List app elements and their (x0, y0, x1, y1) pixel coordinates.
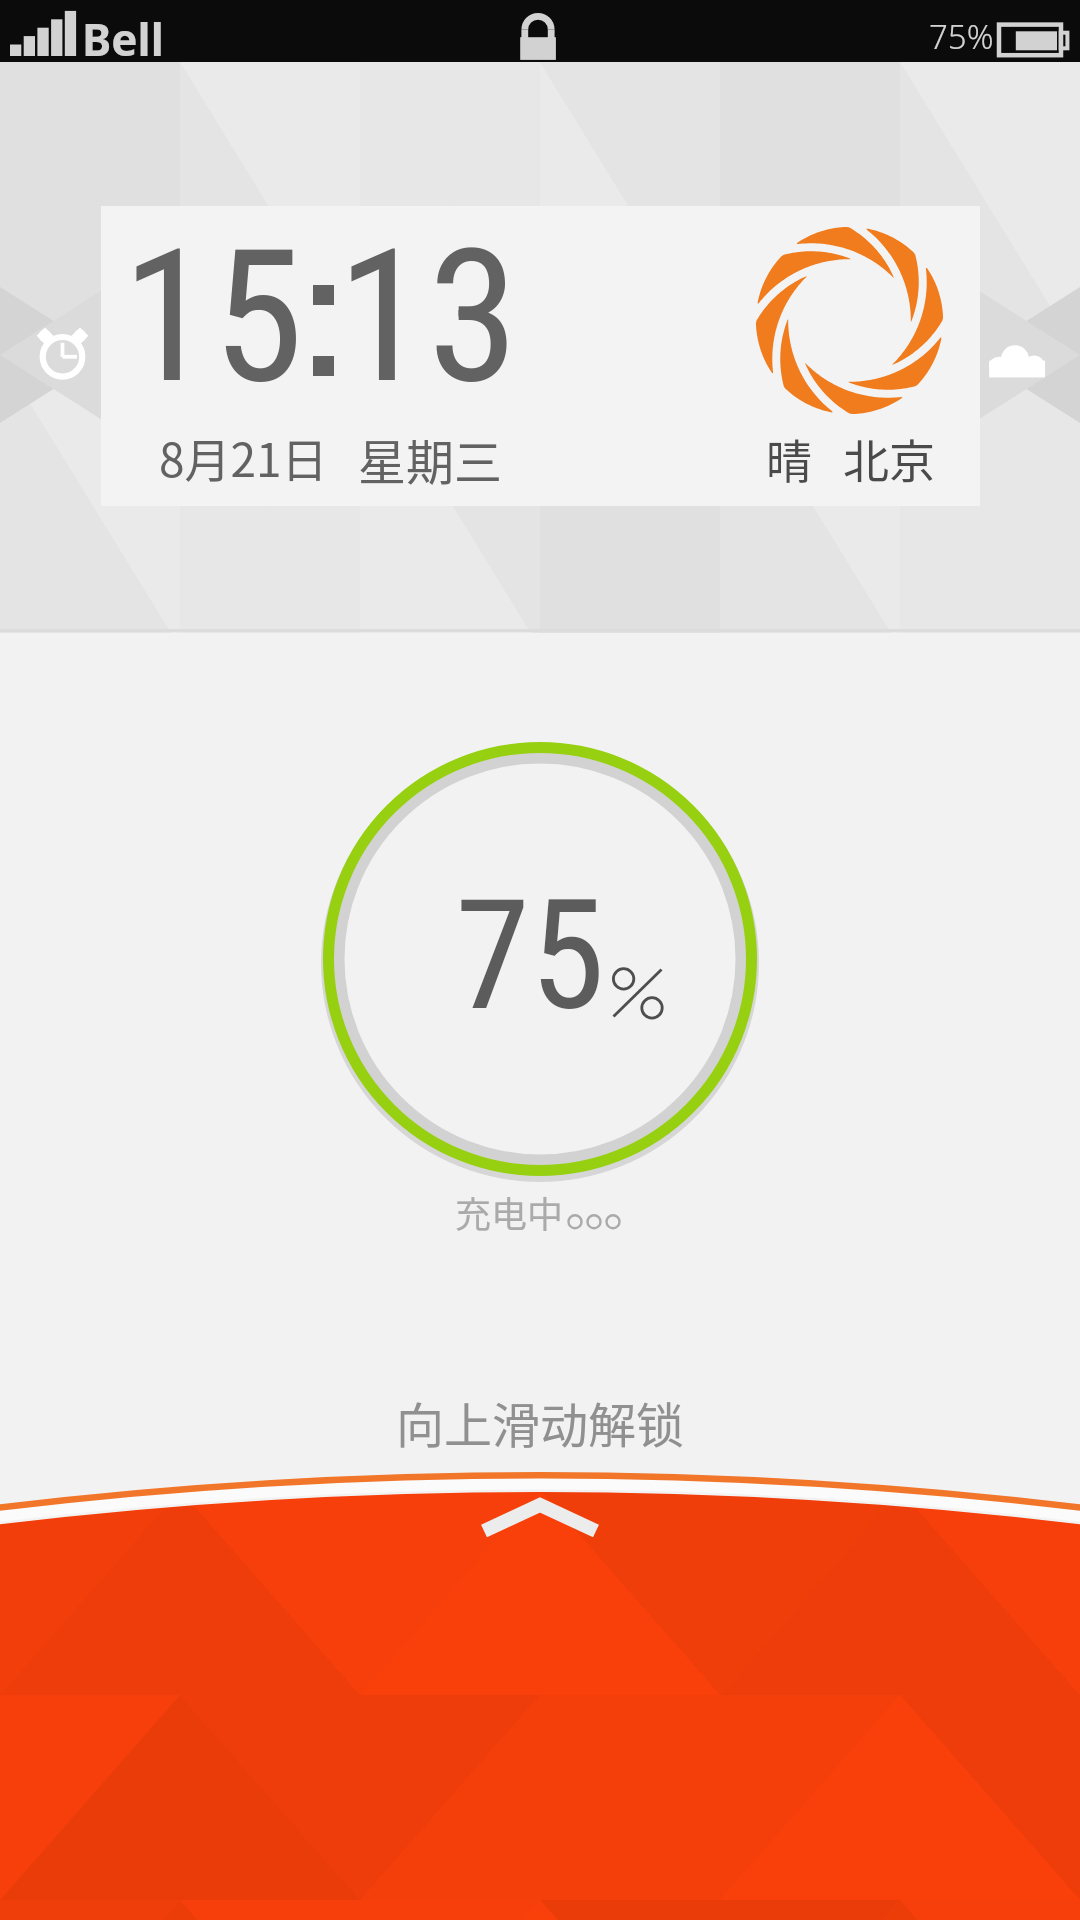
staticText: Bell (82, 9, 164, 69)
staticText: 8月21日 (159, 424, 328, 491)
staticText: 星期三 (358, 424, 503, 494)
button[interactable]: 15 (101, 206, 980, 506)
staticText: 向上滑动解锁 (396, 1387, 685, 1457)
staticText: 13 (337, 209, 519, 425)
staticText: 充电中 (455, 1186, 564, 1238)
staticText: 75% (929, 14, 994, 59)
staticText: 75 (455, 867, 606, 1045)
button[interactable]: Alarm (26, 320, 98, 392)
staticText: 15 (122, 209, 304, 425)
button[interactable]: Weather (988, 333, 1048, 393)
staticText: 晴 (766, 425, 812, 492)
staticText: 北京 (843, 425, 935, 492)
button[interactable]: Slide up to unlock (0, 0, 1080, 1920)
